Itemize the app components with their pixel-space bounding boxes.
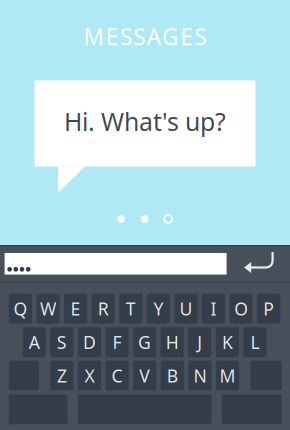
button[interactable]: M bbox=[216, 361, 239, 390]
staticText: A bbox=[29, 330, 40, 354]
button[interactable]: D bbox=[78, 327, 101, 357]
button[interactable]: J bbox=[188, 327, 211, 357]
staticText: X bbox=[84, 364, 94, 388]
staticText: O bbox=[234, 297, 248, 321]
staticText: K bbox=[222, 330, 233, 354]
staticText: D bbox=[83, 330, 96, 354]
staticText: M bbox=[219, 364, 235, 388]
staticText: E bbox=[71, 297, 81, 321]
button[interactable]: L bbox=[243, 327, 267, 357]
staticText: F bbox=[112, 330, 121, 354]
button[interactable]: T bbox=[119, 294, 142, 324]
button[interactable]: V bbox=[133, 361, 156, 390]
button[interactable]: Z bbox=[50, 361, 73, 390]
button[interactable]: X bbox=[78, 361, 101, 390]
button[interactable]: Y bbox=[147, 294, 170, 324]
staticText: Hi. What's up? bbox=[64, 104, 226, 138]
button[interactable]: W bbox=[36, 294, 60, 324]
button[interactable]: O bbox=[230, 294, 253, 324]
button[interactable]: H bbox=[161, 327, 184, 357]
button[interactable]: Return bbox=[238, 251, 278, 277]
staticText: C bbox=[112, 364, 123, 388]
staticText: Z bbox=[57, 364, 67, 388]
button[interactable]: N bbox=[188, 361, 211, 390]
staticText: I bbox=[211, 297, 217, 321]
staticText: Q bbox=[13, 297, 27, 321]
button[interactable]: U bbox=[174, 294, 198, 324]
staticText: Y bbox=[153, 297, 163, 321]
staticText: J bbox=[197, 330, 202, 354]
staticText: P bbox=[263, 297, 274, 321]
button[interactable]: A bbox=[23, 327, 46, 357]
staticText: S bbox=[57, 330, 67, 354]
button[interactable]: R bbox=[92, 294, 115, 324]
staticText: W bbox=[40, 297, 56, 321]
button[interactable]: F bbox=[105, 327, 129, 357]
button[interactable]: I bbox=[202, 294, 225, 324]
button[interactable]: Q bbox=[9, 294, 32, 324]
staticText: H bbox=[166, 330, 179, 354]
staticText: N bbox=[193, 364, 206, 388]
staticText: T bbox=[126, 297, 136, 321]
button[interactable]: S bbox=[50, 327, 73, 357]
staticText: R bbox=[98, 297, 109, 321]
button[interactable]: P bbox=[257, 294, 280, 324]
button[interactable]: G bbox=[133, 327, 156, 357]
button[interactable]: K bbox=[216, 327, 239, 357]
staticText: B bbox=[167, 364, 178, 388]
button[interactable]: E bbox=[64, 294, 87, 324]
staticText: L bbox=[250, 330, 259, 354]
staticText: G bbox=[138, 330, 151, 354]
staticText: U bbox=[179, 297, 192, 321]
staticText: V bbox=[139, 364, 150, 388]
button[interactable]: B bbox=[161, 361, 184, 390]
button[interactable]: C bbox=[105, 361, 129, 390]
staticText: MESSAGES bbox=[83, 21, 207, 51]
